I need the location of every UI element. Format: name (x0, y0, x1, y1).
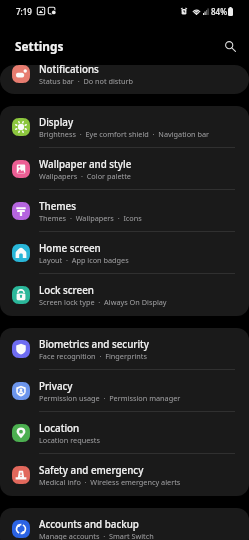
staticText: Medical info · Wireless emergency alerts (39, 477, 181, 487)
staticText: Manage accounts · Smart Switch (39, 531, 154, 540)
staticText: Display (39, 116, 74, 129)
staticText: Themes · Wallpapers · Icons (39, 213, 142, 223)
button[interactable]: Privacy (0, 370, 249, 412)
staticText: 84% (211, 6, 227, 17)
staticText: Home screen (39, 242, 101, 255)
button[interactable]: Lock screen (0, 274, 249, 316)
staticText: Face recognition · Fingerprints (39, 351, 147, 361)
button[interactable]: Themes (0, 190, 249, 232)
staticText: Notifications (39, 65, 99, 76)
button[interactable]: Search (217, 33, 243, 59)
staticText: Themes (39, 200, 76, 213)
button[interactable]: Home screen (0, 232, 249, 274)
staticText: 7:19 (16, 6, 32, 17)
staticText: Accounts and backup (39, 518, 139, 531)
staticText: Safety and emergency (39, 464, 144, 477)
staticText: Layout · App icon badges (39, 255, 129, 265)
staticText: Privacy (39, 380, 73, 393)
staticText: Screen lock type · Always On Display (39, 297, 167, 307)
staticText: Location (39, 422, 80, 435)
button[interactable]: Wallpaper and style (0, 148, 249, 190)
button[interactable]: Notifications (0, 65, 249, 94)
button[interactable]: Biometrics and security (0, 328, 249, 370)
staticText: Wallpapers · Color palette (39, 171, 131, 181)
staticText: Location requests (39, 435, 100, 445)
staticText: Wallpaper and style (39, 158, 132, 171)
staticText: Lock screen (39, 284, 94, 297)
button[interactable]: Safety and emergency (0, 454, 249, 496)
staticText: Status bar · Do not disturb (39, 76, 134, 86)
button[interactable]: Accounts and backup (0, 508, 249, 540)
staticText: Biometrics and security (39, 338, 150, 351)
staticText: Permission usage · Permission manager (39, 393, 181, 403)
staticText: Settings (15, 38, 64, 54)
button[interactable]: Location (0, 412, 249, 454)
staticText: Brightness · Eye comfort shield · Naviga… (39, 129, 210, 139)
button[interactable]: Display (0, 106, 249, 148)
